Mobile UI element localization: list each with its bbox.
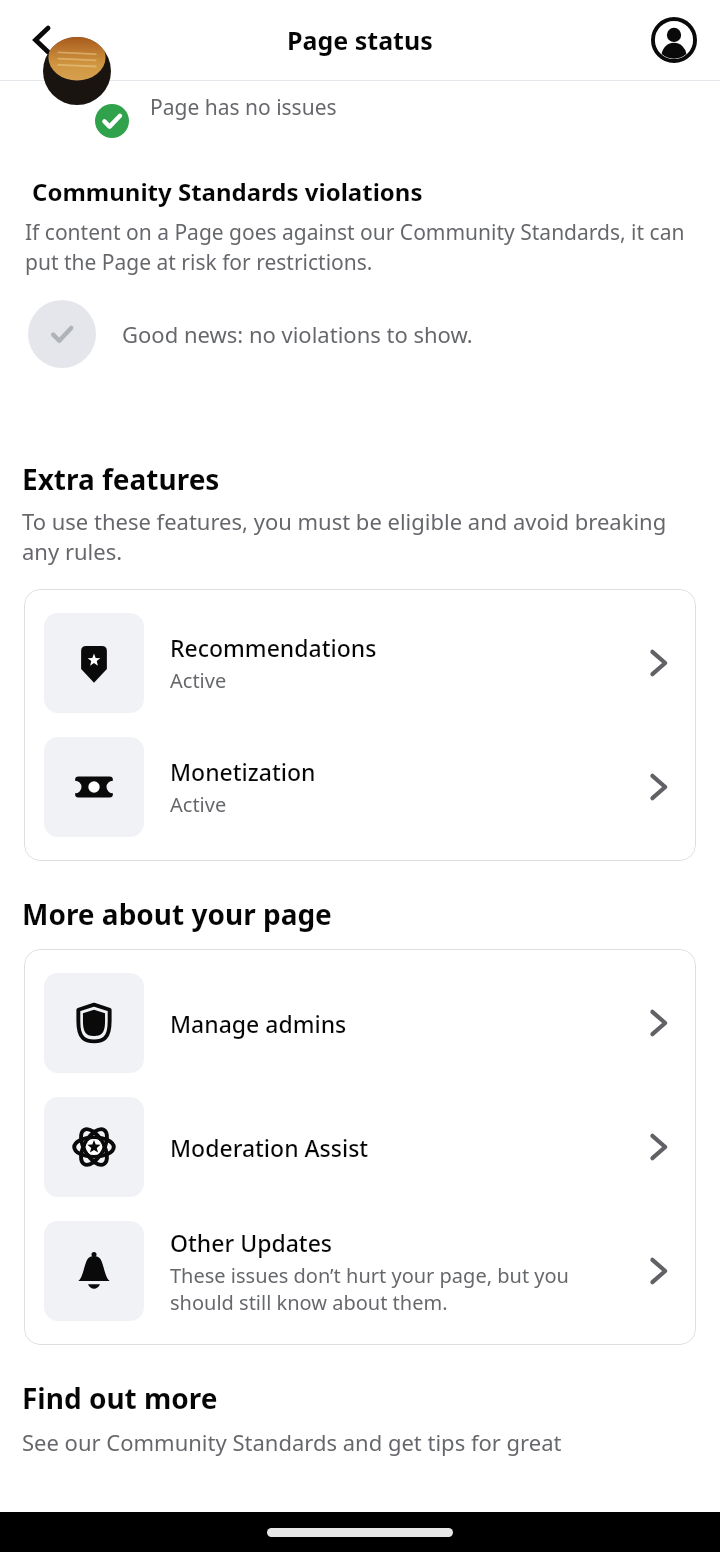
staticText: Other Updates xyxy=(170,1227,333,1258)
staticText: Active xyxy=(170,667,227,694)
staticText: If content on a Page goes against our Co… xyxy=(25,218,700,276)
staticText: Active xyxy=(170,791,227,818)
button[interactable]: Moderation Assist xyxy=(24,1085,696,1209)
button[interactable]: Monetization xyxy=(24,725,696,849)
button[interactable]: Other Updates xyxy=(24,1209,696,1333)
button[interactable]: Recommendations xyxy=(24,601,696,725)
staticText: See our Community Standards and get tips… xyxy=(22,1427,562,1457)
staticText: Community Standards violations xyxy=(32,175,423,208)
button[interactable]: Profile xyxy=(642,8,706,72)
staticText: These issues don’t hurt your page, but y… xyxy=(170,1262,628,1316)
staticText: Find out more xyxy=(22,1379,218,1417)
staticText: Monetization xyxy=(170,756,316,787)
staticText: Moderation Assist xyxy=(170,1132,369,1163)
staticText: Recommendations xyxy=(170,632,377,663)
staticText: Extra features xyxy=(22,460,220,498)
staticText: Page status xyxy=(287,23,433,57)
button[interactable]: Back xyxy=(10,8,74,72)
staticText: Page has no issues xyxy=(150,93,337,122)
staticText: Good news: no violations to show. xyxy=(122,319,473,349)
staticText: Manage admins xyxy=(170,1008,347,1039)
staticText: To use these features, you must be eligi… xyxy=(22,506,702,567)
button[interactable]: Manage admins xyxy=(24,961,696,1085)
staticText: More about your page xyxy=(22,895,332,933)
